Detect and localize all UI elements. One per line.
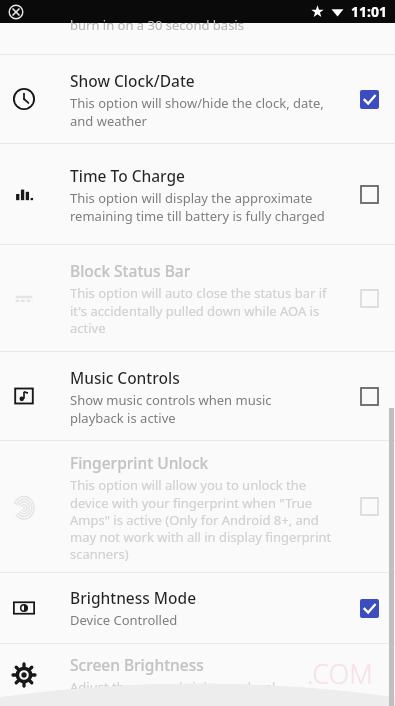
- staticText: This option will allow you to unlock the…: [70, 476, 332, 562]
- staticText: This option will display the approximate…: [70, 189, 325, 224]
- button[interactable]: Unchecked: [360, 497, 379, 516]
- staticText: burn in on a 30 second basis: [70, 16, 244, 34]
- button[interactable]: Checked: [360, 90, 379, 109]
- staticText: Screen Brightness: [70, 654, 204, 675]
- staticText: .COM: [307, 655, 373, 692]
- button[interactable]: Screen Brightness: [0, 644, 395, 706]
- button[interactable]: Music Controls: [0, 352, 395, 440]
- button[interactable]: Checked: [360, 599, 379, 618]
- button[interactable]: Unchecked: [360, 387, 379, 406]
- staticText: This option will show/hide the clock, da…: [70, 94, 324, 129]
- staticText: Brightness Mode: [70, 587, 197, 608]
- staticText: Music Controls: [70, 367, 180, 388]
- staticText: Fingerprint Unlock: [70, 452, 209, 473]
- button[interactable]: Fingerprint Unlock: [0, 441, 395, 572]
- staticText: This option will auto close the status b…: [70, 284, 327, 336]
- button[interactable]: Brightness Mode: [0, 573, 395, 643]
- staticText: Show music controls when music playback …: [70, 391, 272, 426]
- staticText: Device Controlled: [70, 611, 178, 629]
- button[interactable]: Unchecked: [360, 289, 379, 308]
- staticText: Block Status Bar: [70, 260, 191, 281]
- button[interactable]: Show Clock/Date: [0, 55, 395, 143]
- button[interactable]: Time To Charge: [0, 144, 395, 244]
- staticText: Adjust the screen brightness level: [70, 678, 276, 696]
- staticText: Show Clock/Date: [70, 70, 195, 91]
- button[interactable]: Unchecked: [360, 185, 379, 204]
- staticText: 11:01: [351, 2, 387, 21]
- staticText: Time To Charge: [70, 165, 185, 186]
- button[interactable]: Block Status Bar: [0, 245, 395, 351]
